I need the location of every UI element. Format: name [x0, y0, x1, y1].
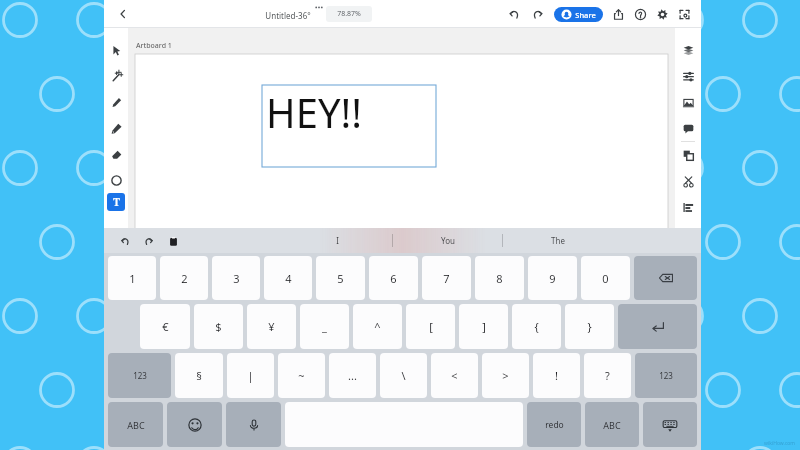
- staticText: 123: [133, 370, 147, 381]
- staticText: €: [162, 319, 169, 334]
- staticText: 0: [602, 271, 609, 286]
- staticText: <: [451, 368, 458, 383]
- staticText: 5: [337, 271, 344, 286]
- button[interactable]: €: [140, 304, 190, 349]
- button[interactable]: Enter: [618, 304, 697, 349]
- staticText: ABC: [127, 419, 145, 431]
- button[interactable]: Back: [112, 3, 134, 25]
- button[interactable]: 9: [528, 256, 577, 300]
- button[interactable]: ABC: [585, 402, 639, 447]
- staticText: [: [429, 319, 433, 334]
- button[interactable]: 1: [108, 256, 156, 300]
- button[interactable]: >: [482, 353, 529, 398]
- button[interactable]: Duplicate: [679, 142, 697, 168]
- staticText: ...: [348, 368, 357, 383]
- staticText: The: [551, 235, 565, 246]
- button[interactable]: §: [175, 353, 223, 398]
- button[interactable]: [: [406, 304, 455, 349]
- staticText: !: [555, 368, 558, 383]
- button[interactable]: 2: [160, 256, 208, 300]
- button[interactable]: 7: [422, 256, 471, 300]
- button[interactable]: 0: [581, 256, 630, 300]
- button[interactable]: \: [380, 353, 427, 398]
- staticText: |: [247, 368, 254, 383]
- staticText: 3: [233, 271, 240, 286]
- staticText: }: [587, 319, 592, 334]
- button[interactable]: Settings: [653, 5, 671, 23]
- staticText: ]: [482, 319, 486, 334]
- staticText: ~: [298, 368, 305, 383]
- button[interactable]: !: [533, 353, 580, 398]
- button[interactable]: ...: [329, 353, 376, 398]
- staticText: 9: [549, 271, 556, 286]
- button[interactable]: HEY!!: [262, 85, 436, 167]
- staticText: 2: [181, 271, 188, 286]
- button[interactable]: Pencil: [107, 115, 125, 141]
- button[interactable]: Layers: [679, 37, 697, 63]
- button[interactable]: 4: [264, 256, 312, 300]
- button[interactable]: You: [393, 228, 502, 253]
- button[interactable]: Voice input: [226, 402, 281, 447]
- staticText: redo: [545, 419, 564, 431]
- button[interactable]: 123: [108, 353, 171, 398]
- button[interactable]: Undo: [116, 232, 134, 250]
- button[interactable]: _: [300, 304, 349, 349]
- button[interactable]: Align: [679, 194, 697, 220]
- staticText: Share: [575, 10, 596, 20]
- button[interactable]: Clipboard: [164, 232, 182, 250]
- button[interactable]: Cut: [679, 168, 697, 194]
- staticText: 123: [659, 370, 673, 381]
- button[interactable]: |: [227, 353, 274, 398]
- button[interactable]: {: [512, 304, 561, 349]
- button[interactable]: Fullscreen: [675, 5, 693, 23]
- button[interactable]: redo: [527, 402, 581, 447]
- button[interactable]: 8: [475, 256, 524, 300]
- button[interactable]: Adjustments: [679, 63, 697, 89]
- button[interactable]: Hide keyboard: [643, 402, 697, 447]
- button[interactable]: <: [431, 353, 478, 398]
- button[interactable]: ?: [584, 353, 631, 398]
- button[interactable]: ¥: [247, 304, 296, 349]
- button[interactable]: Redo: [528, 4, 548, 24]
- button[interactable]: I: [282, 228, 392, 253]
- button[interactable]: 3: [212, 256, 260, 300]
- button[interactable]: 6: [369, 256, 418, 300]
- button[interactable]: Select: [107, 37, 125, 63]
- button[interactable]: Magic wand: [107, 63, 125, 89]
- button[interactable]: ^: [353, 304, 402, 349]
- staticText: 78.87%: [337, 9, 361, 19]
- button[interactable]: $: [194, 304, 243, 349]
- button[interactable]: Export: [609, 5, 627, 23]
- button[interactable]: 5: [316, 256, 365, 300]
- button[interactable]: Text tool: [107, 193, 125, 211]
- staticText: ?: [605, 368, 610, 383]
- button[interactable]: Undo: [504, 4, 524, 24]
- staticText: 1: [129, 271, 136, 286]
- button[interactable]: Share: [554, 7, 603, 22]
- button[interactable]: ]: [459, 304, 508, 349]
- button[interactable]: Comment: [679, 115, 697, 141]
- staticText: ABC: [603, 419, 621, 431]
- button[interactable]: Emoji: [167, 402, 222, 447]
- button[interactable]: Redo: [140, 232, 158, 250]
- button[interactable]: Help: [631, 5, 649, 23]
- button[interactable]: ABC: [108, 402, 163, 447]
- button[interactable]: Backspace: [634, 256, 697, 300]
- staticText: §: [196, 368, 202, 383]
- button[interactable]: Pen: [107, 89, 125, 115]
- staticText: 8: [496, 271, 503, 286]
- staticText: {: [534, 319, 539, 334]
- button[interactable]: Eraser: [107, 141, 125, 167]
- button[interactable]: Image: [679, 89, 697, 115]
- button[interactable]: The: [503, 228, 612, 253]
- staticText: ^: [374, 319, 381, 334]
- staticText: >: [502, 368, 509, 383]
- button[interactable]: }: [565, 304, 614, 349]
- button[interactable]: ~: [278, 353, 325, 398]
- button[interactable]: 78.87%: [326, 6, 372, 22]
- button[interactable]: Shape: [107, 167, 125, 193]
- button[interactable]: 123: [635, 353, 697, 398]
- staticText: wikiHow.com: [764, 440, 795, 447]
- staticText: Artboard 1: [136, 41, 172, 51]
